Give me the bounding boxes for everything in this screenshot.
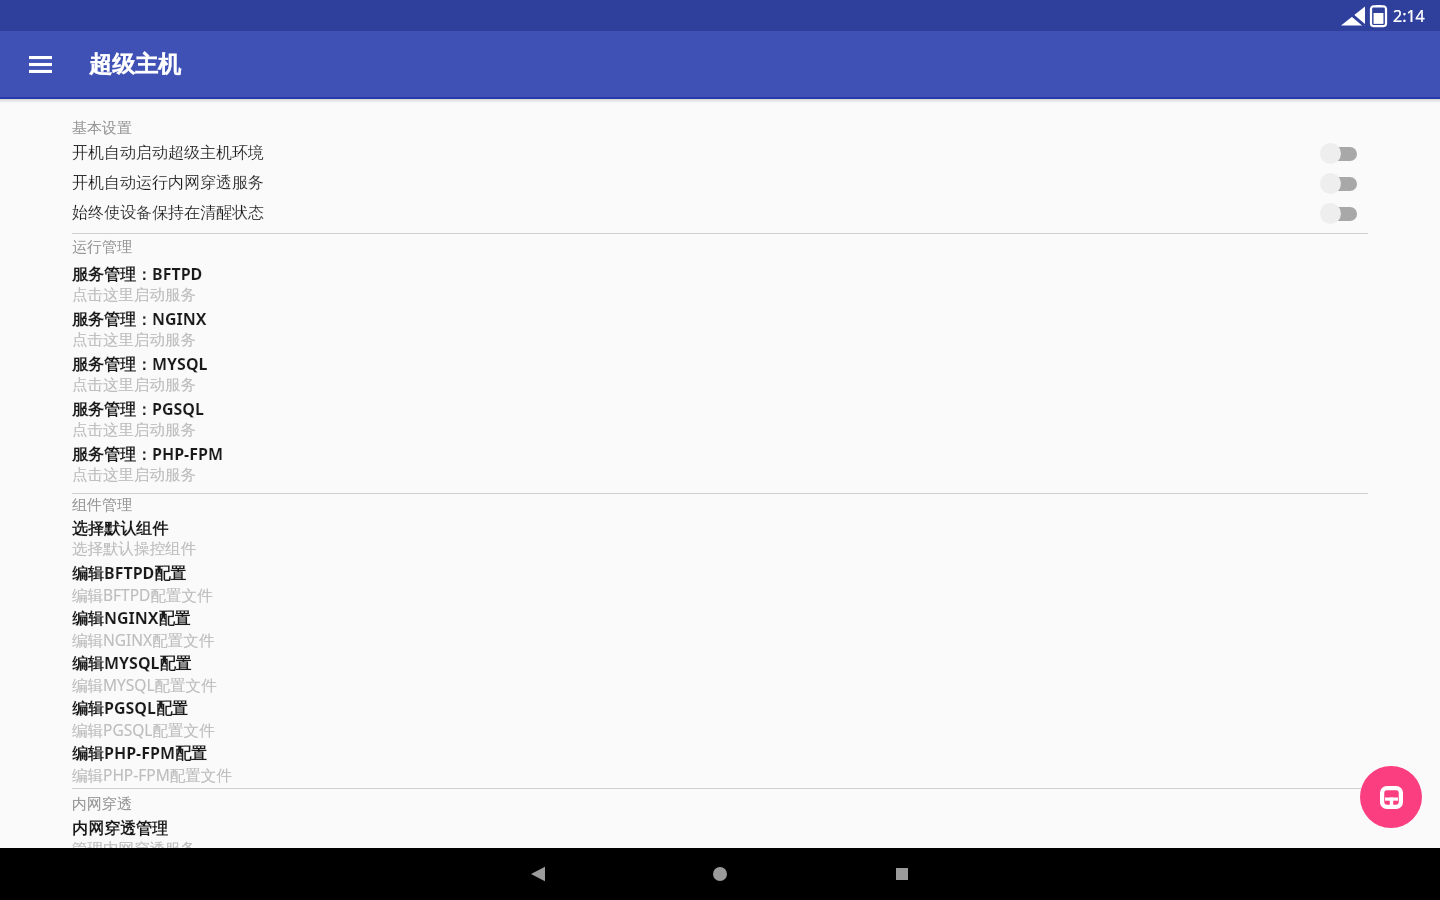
staticText: 服务管理：PGSQL [72, 398, 204, 420]
staticText: 运行管理 [72, 238, 132, 257]
button[interactable]: 开机自动运行内网穿透服务 [0, 168, 1440, 198]
button[interactable]: 服务管理：BFTPD [0, 261, 1440, 306]
staticText: 2:14 [1393, 5, 1425, 27]
staticText: 管理内网穿透服务 [72, 839, 196, 848]
staticText: 内网穿透管理 [72, 819, 168, 839]
button[interactable]: Open terminal [1360, 766, 1422, 828]
button[interactable]: Open navigation drawer [18, 42, 63, 87]
staticText: 服务管理：BFTPD [72, 263, 203, 285]
button[interactable]: Home [694, 848, 746, 900]
staticText: 服务管理：NGINX [72, 308, 207, 330]
staticText: 点击这里启动服务 [72, 375, 196, 395]
button[interactable]: 选择默认组件 [0, 516, 1440, 561]
staticText: 服务管理：PHP-FPM [72, 443, 224, 465]
staticText: 点击这里启动服务 [72, 285, 196, 305]
staticText: 开机自动启动超级主机环境 [72, 143, 1320, 163]
button[interactable]: 编辑PHP-FPM配置 [0, 741, 1440, 786]
staticText: 编辑PGSQL配置 [72, 697, 188, 719]
button[interactable]: 服务管理：MYSQL [0, 351, 1440, 396]
staticText: 编辑NGINX配置文件 [72, 629, 215, 650]
button[interactable]: 服务管理：NGINX [0, 306, 1440, 351]
staticText: 点击这里启动服务 [72, 420, 196, 440]
button[interactable]: 编辑PGSQL配置 [0, 696, 1440, 741]
staticText: 基本设置 [72, 119, 132, 138]
button[interactable]: 编辑NGINX配置 [0, 606, 1440, 651]
staticText: 编辑PHP-FPM配置文件 [72, 764, 232, 785]
button[interactable]: 编辑MYSQL配置 [0, 651, 1440, 696]
staticText: 编辑MYSQL配置 [72, 652, 192, 674]
button[interactable]: Recent apps [876, 848, 928, 900]
button[interactable]: 服务管理：PHP-FPM [0, 441, 1440, 486]
button[interactable]: 内网穿透管理 [0, 819, 1440, 848]
button[interactable]: 始终使设备保持在清醒状态 [0, 198, 1440, 228]
staticText: 始终使设备保持在清醒状态 [72, 203, 1320, 223]
staticText: 开机自动运行内网穿透服务 [72, 173, 1320, 193]
button[interactable]: 服务管理：PGSQL [0, 396, 1440, 441]
button[interactable]: Back [512, 848, 564, 900]
staticText: 编辑PGSQL配置文件 [72, 719, 215, 740]
button[interactable]: 编辑BFTPD配置 [0, 561, 1440, 606]
staticText: 编辑NGINX配置 [72, 607, 191, 629]
staticText: 点击这里启动服务 [72, 330, 196, 350]
staticText: 选择默认组件 [72, 519, 168, 539]
staticText: 服务管理：MYSQL [72, 353, 208, 375]
staticText: 编辑BFTPD配置文件 [72, 584, 213, 605]
staticText: 编辑PHP-FPM配置 [72, 742, 208, 764]
staticText: 选择默认操控组件 [72, 539, 196, 559]
staticText: 内网穿透 [72, 795, 132, 814]
staticText: 编辑BFTPD配置 [72, 562, 187, 584]
staticText: 点击这里启动服务 [72, 465, 196, 485]
staticText: 超级主机 [89, 50, 181, 79]
staticText: 组件管理 [72, 496, 132, 515]
staticText: 编辑MYSQL配置文件 [72, 674, 217, 695]
button[interactable]: 开机自动启动超级主机环境 [0, 138, 1440, 168]
